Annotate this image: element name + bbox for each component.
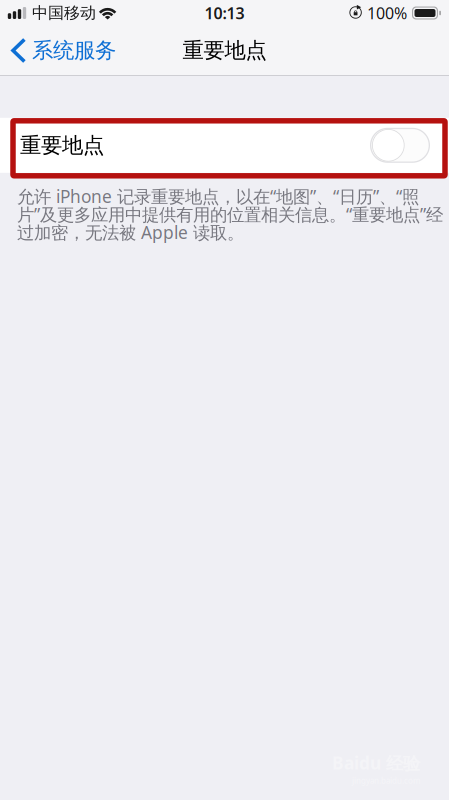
staticText: 系统服务 [32,37,116,64]
button[interactable]: 系统服务 [0,26,126,75]
staticText: 100% [367,2,407,24]
button[interactable]: 重要地点 [0,118,449,173]
staticText: 10:13 [204,2,244,24]
staticText: 重要地点 [182,37,266,64]
staticText: 重要地点 [20,132,104,158]
staticText: 中国移动 [32,3,96,23]
staticText: 允许 iPhone 记录重要地点，以在“地图”、“日历”、“照片”及更多应用中提… [17,185,443,244]
